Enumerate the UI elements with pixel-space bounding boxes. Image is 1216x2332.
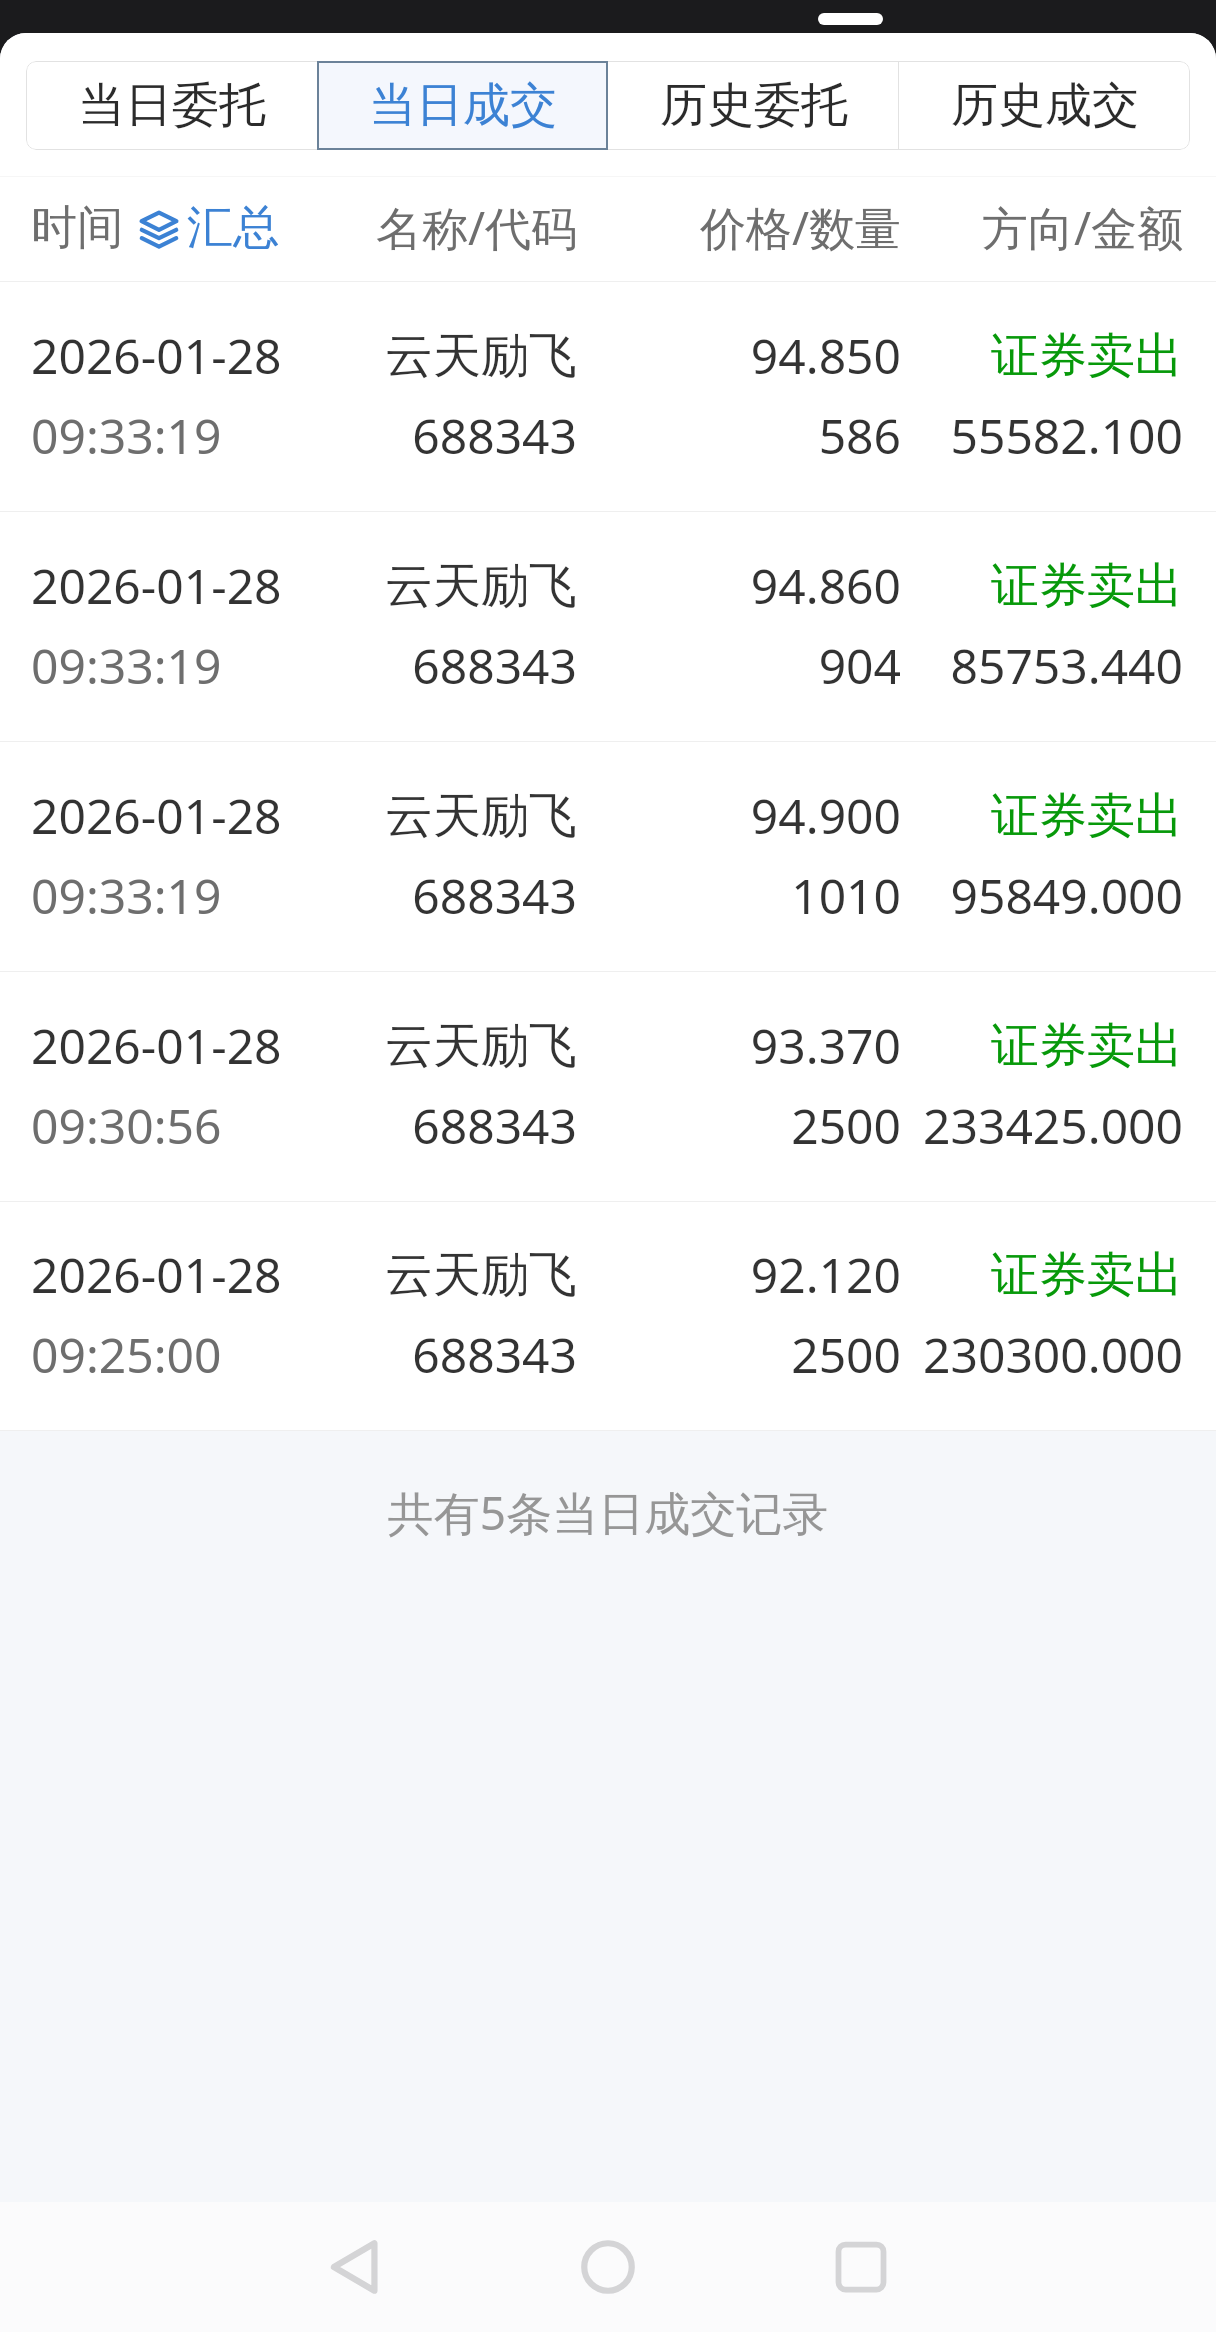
staticText: 2026-01-28 (31, 553, 330, 618)
staticText: 历史成交 (951, 76, 1139, 135)
staticText: 09:33:19 (31, 403, 330, 468)
staticText: 历史委托 (660, 76, 848, 135)
staticText: 证券卖出 (901, 556, 1183, 616)
staticText: 904 (577, 633, 901, 698)
button[interactable]: 历史成交 (899, 61, 1190, 150)
staticText: 当日成交 (369, 76, 557, 135)
staticText: 586 (577, 403, 901, 468)
button[interactable]: 汇总 Summary (139, 199, 279, 257)
staticText: 时间 (31, 199, 123, 257)
button[interactable]: 2026-01-28 (0, 512, 1216, 742)
staticText: 688343 (330, 633, 577, 698)
staticText: 09:33:19 (31, 633, 330, 698)
staticText: 92.120 (577, 1242, 901, 1307)
staticText: 94.860 (577, 553, 901, 618)
staticText: 85753.440 (901, 633, 1183, 698)
staticText: 2500 (577, 1093, 901, 1158)
staticText: 当日委托 (78, 76, 266, 135)
button[interactable]: Back (291, 2202, 419, 2332)
staticText: 688343 (330, 403, 577, 468)
button[interactable]: 2026-01-28 (0, 282, 1216, 512)
staticText: 名称/代码 (330, 196, 577, 259)
staticText: 方向/金额 (901, 196, 1183, 259)
staticText: 2026-01-28 (31, 323, 330, 388)
button[interactable]: 2026-01-28 (0, 972, 1216, 1202)
button[interactable]: Recents (797, 2202, 925, 2332)
staticText: 证券卖出 (901, 1245, 1183, 1305)
staticText: 证券卖出 (901, 326, 1183, 386)
button[interactable]: 当日委托 (26, 61, 317, 150)
staticText: 云天励飞 (330, 1245, 577, 1305)
staticText: 95849.000 (901, 863, 1183, 928)
staticText: 2026-01-28 (31, 1013, 330, 1078)
button[interactable]: Home (544, 2202, 672, 2332)
button[interactable]: 2026-01-28 (0, 1202, 1216, 1431)
staticText: 94.850 (577, 323, 901, 388)
staticText: 09:25:00 (31, 1322, 330, 1387)
staticText: 价格/数量 (577, 196, 901, 259)
staticText: 2026-01-28 (31, 783, 330, 848)
staticText: 证券卖出 (901, 1016, 1183, 1076)
staticText: 230300.000 (901, 1322, 1183, 1387)
staticText: 证券卖出 (901, 786, 1183, 846)
button[interactable]: 历史委托 (608, 61, 899, 150)
staticText: 云天励飞 (330, 556, 577, 616)
staticText: 688343 (330, 863, 577, 928)
staticText: 云天励飞 (330, 786, 577, 846)
staticText: 共有5条当日成交记录 (0, 1481, 1216, 1544)
staticText: 09:33:19 (31, 863, 330, 928)
button[interactable]: 当日成交 (317, 61, 608, 150)
staticText: 55582.100 (901, 403, 1183, 468)
staticText: 688343 (330, 1322, 577, 1387)
button[interactable]: 2026-01-28 (0, 742, 1216, 972)
staticText: 云天励飞 (330, 326, 577, 386)
staticText: 94.900 (577, 783, 901, 848)
staticText: 2026-01-28 (31, 1242, 330, 1307)
staticText: 云天励飞 (330, 1016, 577, 1076)
staticText: 09:30:56 (31, 1093, 330, 1158)
staticText: 688343 (330, 1093, 577, 1158)
staticText: 93.370 (577, 1013, 901, 1078)
staticText: 233425.000 (901, 1093, 1183, 1158)
staticText: 1010 (577, 863, 901, 928)
staticText: 2500 (577, 1322, 901, 1387)
staticText: 汇总 (187, 199, 279, 257)
